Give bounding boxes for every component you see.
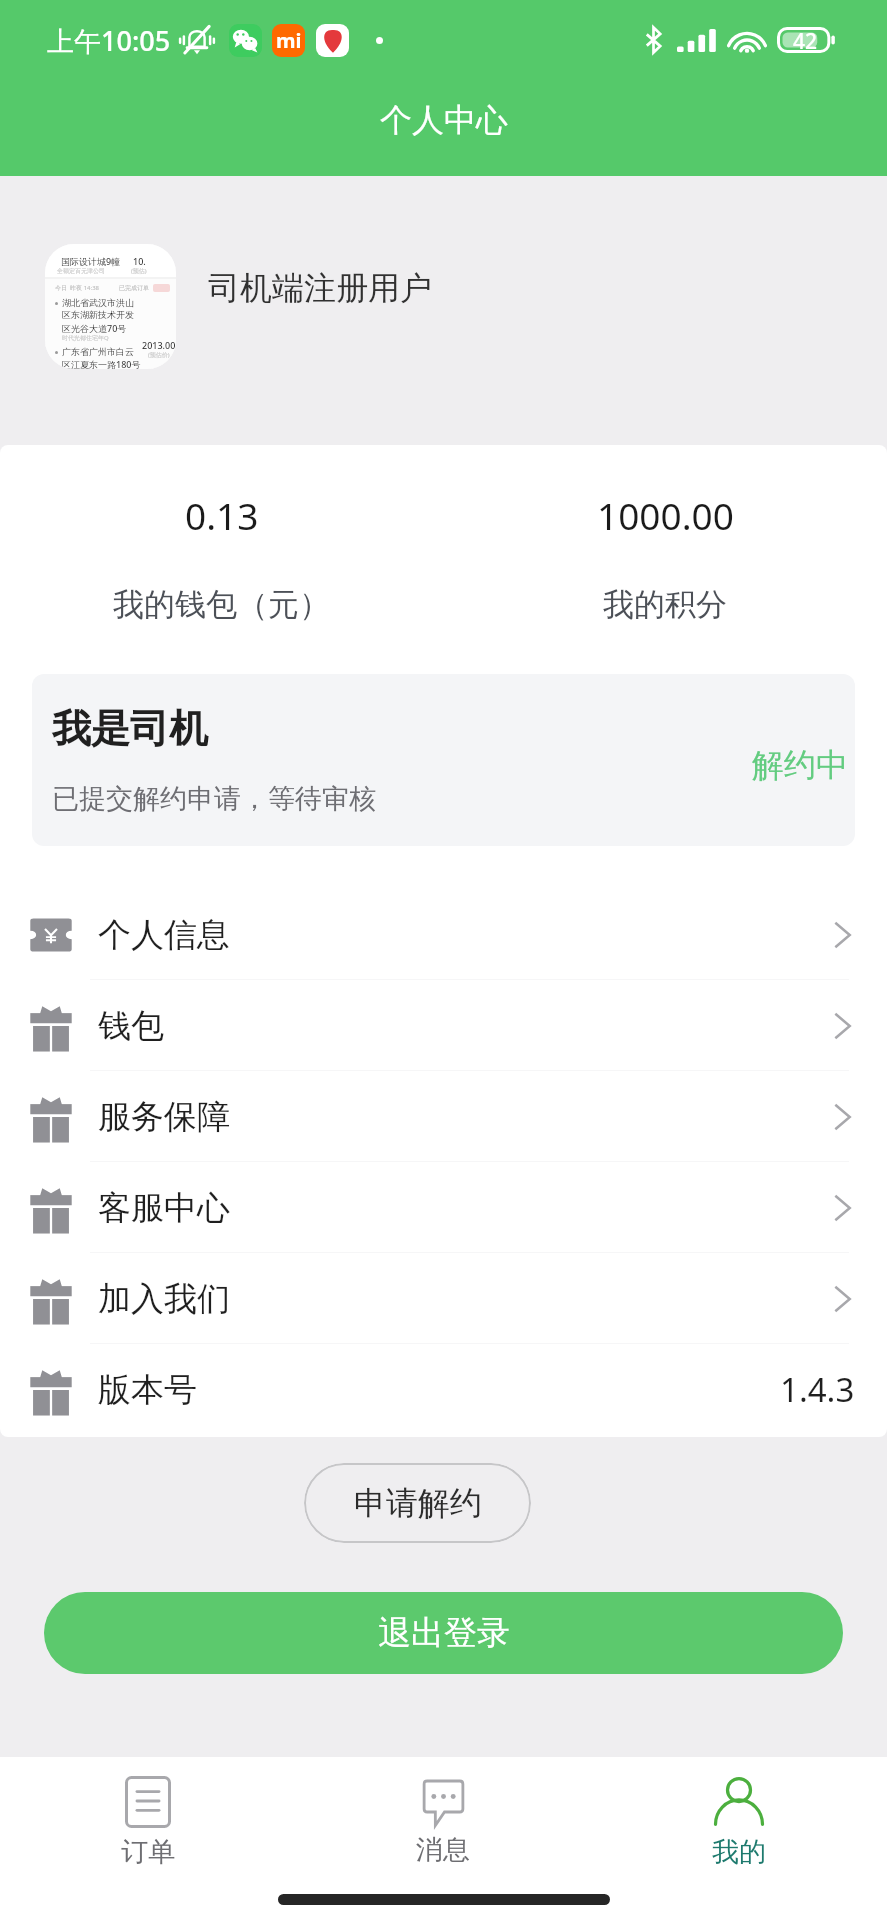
staticText: 上午10:05 xyxy=(47,22,171,59)
button[interactable]: 1000.00 xyxy=(443,490,887,624)
staticText: 退出登录 xyxy=(378,1612,510,1654)
staticText: 2013.00 xyxy=(142,339,176,351)
button[interactable]: 加入我们 xyxy=(0,1253,887,1344)
staticText: 我的 xyxy=(712,1835,766,1869)
staticText: 加入我们 xyxy=(98,1278,230,1320)
button[interactable]: 消息 xyxy=(295,1757,591,1867)
staticText: 湖北省武汉市洪山 区东湖新技术开发 区光谷大道70号 xyxy=(62,297,134,334)
staticText: 我的积分 xyxy=(603,585,727,624)
button[interactable]: 钱包 xyxy=(0,980,887,1071)
staticText: 已完成订单 xyxy=(119,284,149,292)
staticText: 消息 xyxy=(416,1833,470,1867)
staticText: 解约中 xyxy=(752,745,848,785)
staticText: (预估价) xyxy=(148,351,170,359)
staticText: 42 xyxy=(793,27,818,53)
staticText: 订单 xyxy=(121,1835,175,1869)
button[interactable]: 我是司机 xyxy=(32,674,855,846)
staticText: 今日 昨夜 14:38 xyxy=(55,284,100,292)
staticText: 客服中心 xyxy=(98,1187,230,1229)
staticText: 10. xyxy=(133,255,146,267)
button[interactable]: 个人信息 xyxy=(0,889,887,980)
staticText: (预估) xyxy=(131,267,147,275)
button[interactable]: 客服中心 xyxy=(0,1162,887,1253)
staticText: 1.4.3 xyxy=(780,1367,855,1412)
button[interactable]: 退出登录 xyxy=(44,1592,843,1674)
staticText: 我是司机 xyxy=(52,704,208,753)
staticText: 个人中心 xyxy=(380,100,508,140)
staticText: 服务保障 xyxy=(98,1096,230,1138)
staticText: 版本号 xyxy=(98,1369,197,1411)
staticText: mi xyxy=(276,27,302,54)
staticText: 0.13 xyxy=(185,490,259,540)
button[interactable]: 订单 xyxy=(0,1757,295,1869)
staticText: 时代光都住宅年Q xyxy=(62,334,109,342)
staticText: 广东省广州市白云 区江夏东一路180号 xyxy=(62,346,141,369)
button[interactable]: 0.13 xyxy=(0,490,443,624)
button[interactable]: 申请解约 xyxy=(304,1463,531,1543)
staticText: 我的钱包（元） xyxy=(113,585,330,624)
staticText: 司机端注册用户 xyxy=(208,268,432,308)
button[interactable]: 版本号 xyxy=(0,1344,887,1435)
staticText: 1000.00 xyxy=(597,490,734,540)
staticText: 钱包 xyxy=(98,1005,164,1047)
staticText: 申请解约 xyxy=(354,1483,482,1523)
staticText: 国际设计城9幢 xyxy=(61,255,121,267)
staticText: 已提交解约申请，等待审核 xyxy=(52,782,376,816)
button[interactable]: 我的 xyxy=(591,1757,887,1869)
button[interactable]: 服务保障 xyxy=(0,1071,887,1162)
staticText: 全额定百元津公司 xyxy=(57,267,105,275)
staticText: 个人信息 xyxy=(98,914,230,956)
